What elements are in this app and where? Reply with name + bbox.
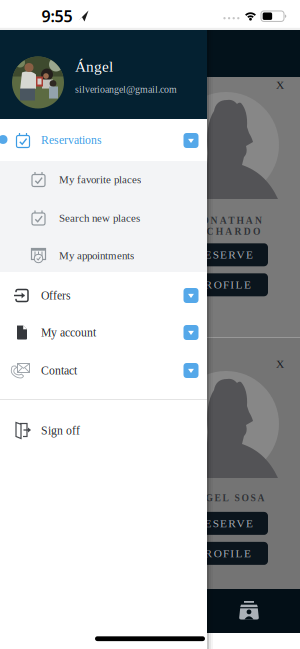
- staticText: RESERVE: [195, 248, 253, 261]
- button[interactable]: Contact: [0, 351, 172, 389]
- staticText: My account: [41, 326, 96, 339]
- button[interactable]: Contacts: [238, 599, 260, 622]
- staticText: Search new places: [59, 212, 140, 224]
- staticText: JONATHAN: [194, 215, 262, 226]
- staticText: PROFILE: [197, 547, 251, 560]
- staticText: 9:55: [41, 5, 72, 27]
- button[interactable]: Offers: [0, 276, 172, 314]
- staticText: PICHARDO: [192, 226, 260, 237]
- staticText: RESERVE: [195, 517, 253, 530]
- staticText: My appointments: [59, 249, 134, 261]
- staticText: X: [276, 358, 284, 370]
- button[interactable]: Expand: [183, 288, 198, 303]
- button[interactable]: Expand: [183, 325, 198, 340]
- button[interactable]: My favorite places: [0, 161, 207, 198]
- staticText: ANGEL SOSA: [187, 493, 264, 503]
- button[interactable]: Search new places: [0, 199, 207, 236]
- button[interactable]: Expand: [183, 363, 198, 378]
- button[interactable]: RESERVE: [180, 512, 268, 535]
- staticText: silverioangel@gmail.com: [75, 84, 177, 95]
- button[interactable]: My appointments: [0, 237, 207, 274]
- staticText: PROFILE: [197, 278, 251, 291]
- button[interactable]: Expand: [183, 133, 198, 148]
- button[interactable]: Close: [269, 354, 291, 374]
- button[interactable]: Reservations: [0, 121, 172, 159]
- staticText: Offers: [41, 289, 71, 302]
- button[interactable]: My account: [0, 313, 172, 351]
- staticText: My favorite places: [59, 173, 141, 185]
- staticText: X: [276, 79, 284, 91]
- button[interactable]: RESERVE: [180, 243, 268, 266]
- button[interactable]: Sign off: [0, 411, 172, 449]
- button[interactable]: PROFILE: [180, 542, 268, 565]
- staticText: Sign off: [41, 424, 80, 437]
- staticText: Reservations: [41, 133, 102, 146]
- staticText: Contact: [41, 364, 77, 377]
- button[interactable]: PROFILE: [180, 273, 268, 296]
- staticText: Ángel: [75, 58, 113, 75]
- button[interactable]: Close: [269, 75, 291, 95]
